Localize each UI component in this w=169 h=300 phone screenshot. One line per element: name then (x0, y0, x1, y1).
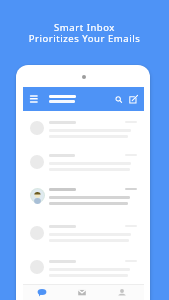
button[interactable] (23, 111, 144, 144)
button[interactable]: Menu (27, 92, 41, 106)
button[interactable]: Profile (102, 284, 142, 300)
button[interactable] (23, 178, 144, 215)
staticText: Prioritizes Your Emails (0, 32, 169, 45)
button[interactable]: Search (112, 92, 126, 106)
button[interactable] (23, 250, 144, 284)
button[interactable]: Chats (21, 284, 62, 300)
button[interactable]: Mail (62, 284, 102, 300)
button[interactable] (23, 215, 144, 250)
staticText: Smart Inbox (0, 21, 169, 34)
button[interactable] (23, 144, 144, 178)
button[interactable]: Compose (126, 92, 140, 106)
